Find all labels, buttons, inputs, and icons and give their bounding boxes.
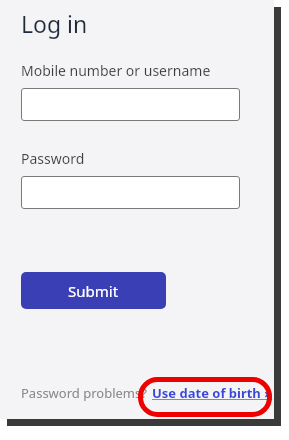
button[interactable] (21, 176, 240, 209)
staticText: Mobile number or username (21, 61, 211, 80)
staticText: Password (21, 149, 85, 168)
staticText: Log in (21, 8, 88, 39)
other: Highlighted link annotation (138, 377, 272, 417)
button[interactable]: Use date of birth » (152, 384, 273, 402)
button[interactable]: Submit (21, 272, 166, 309)
staticText: Password problems? (21, 384, 147, 402)
staticText: Use date of birth » (152, 384, 273, 402)
staticText: Submit (68, 281, 119, 301)
button[interactable] (21, 88, 240, 121)
